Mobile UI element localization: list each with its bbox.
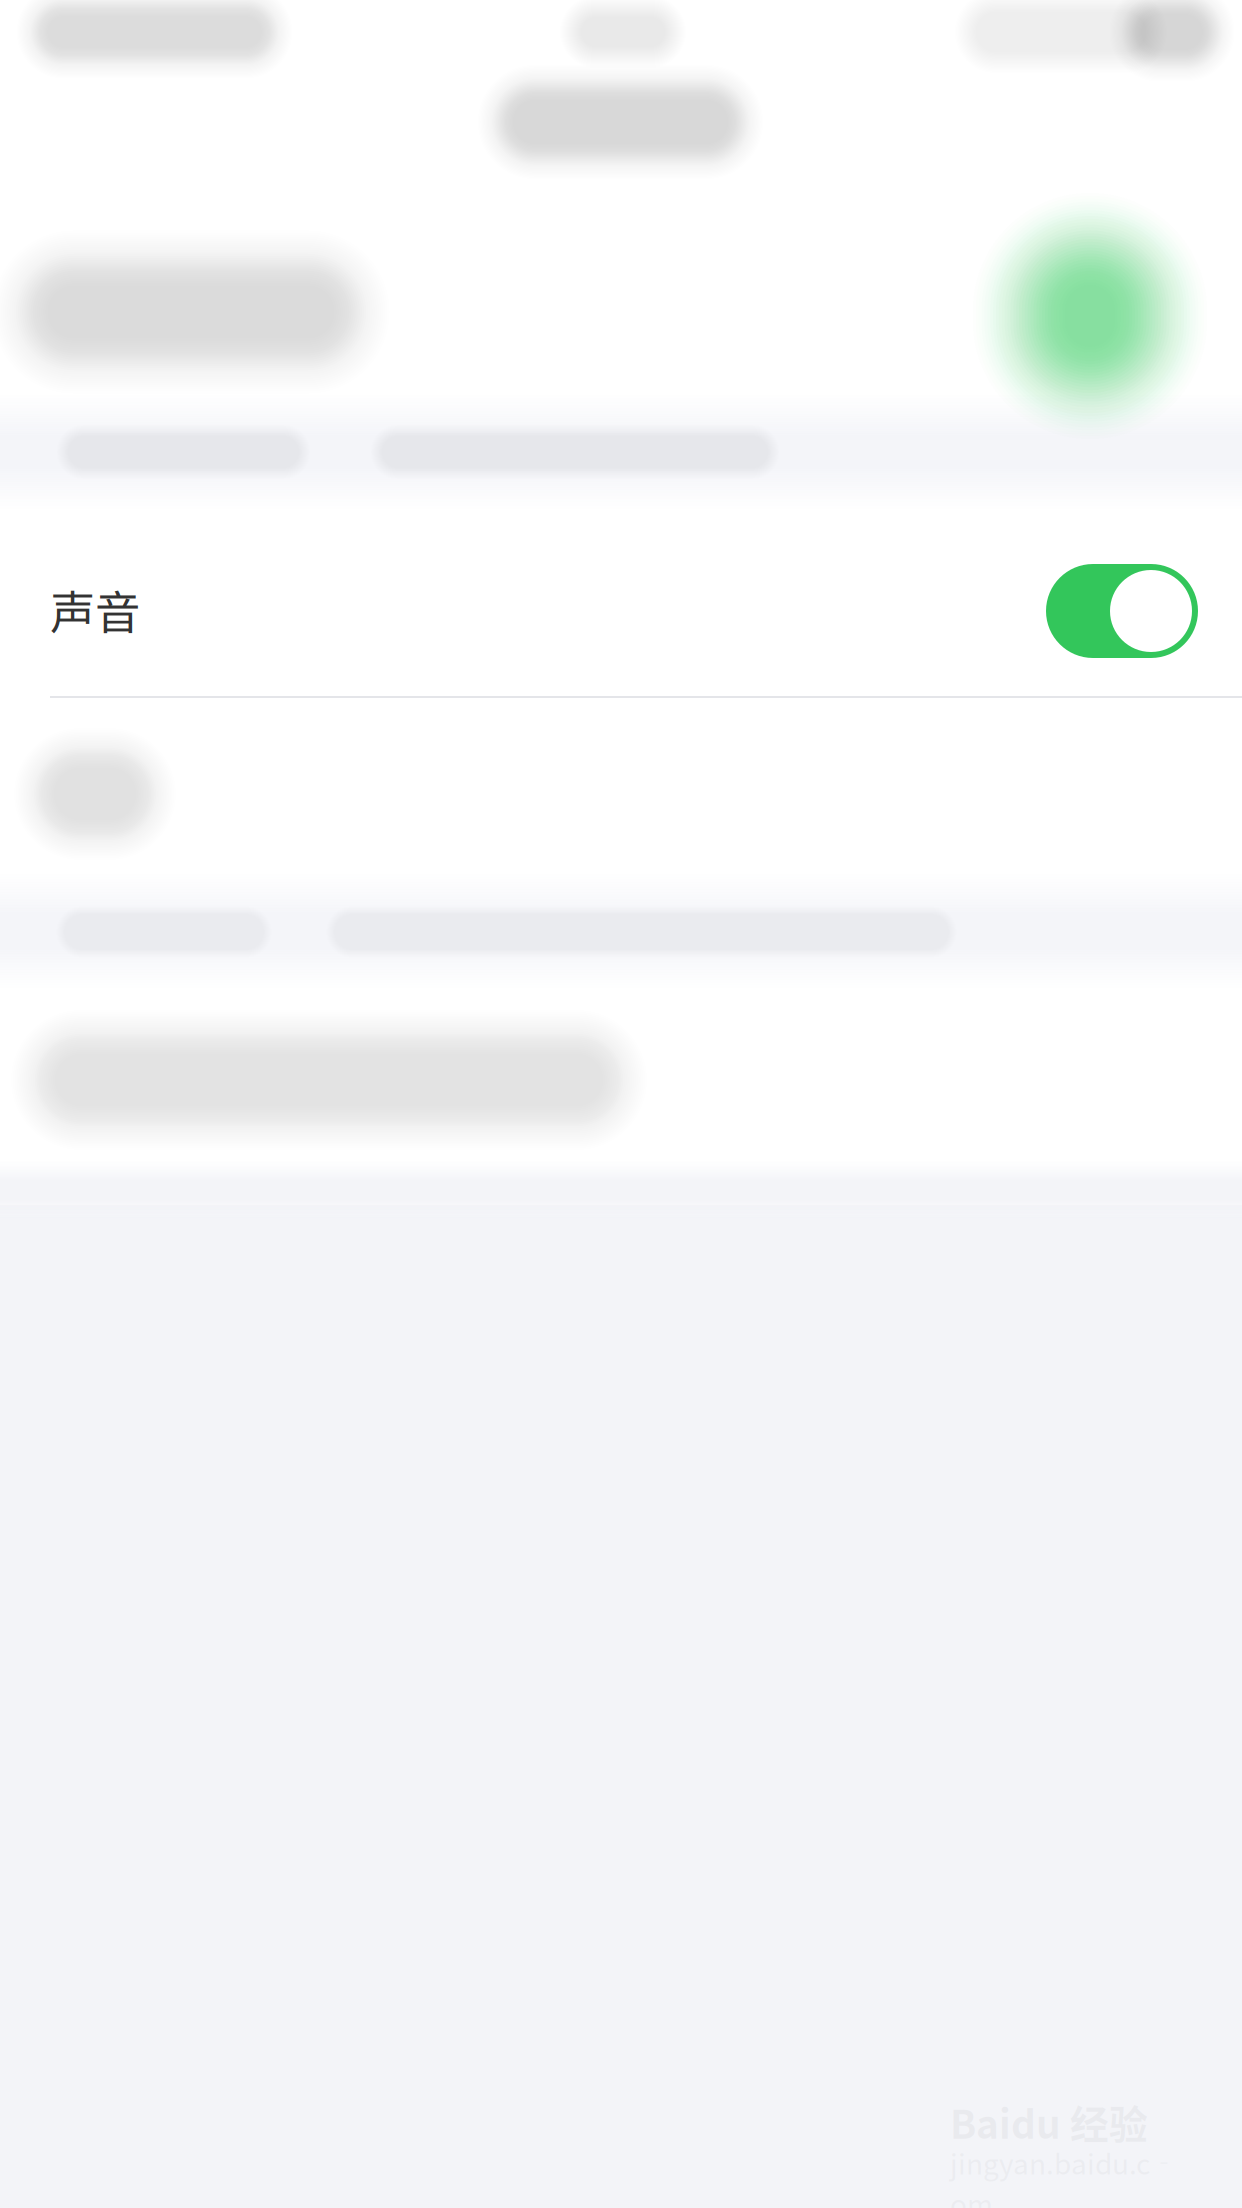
staticText: Baidu 经验 [950,2094,1148,2150]
button[interactable]: 声音 [0,518,1242,704]
staticText: 声音 [50,577,140,643]
